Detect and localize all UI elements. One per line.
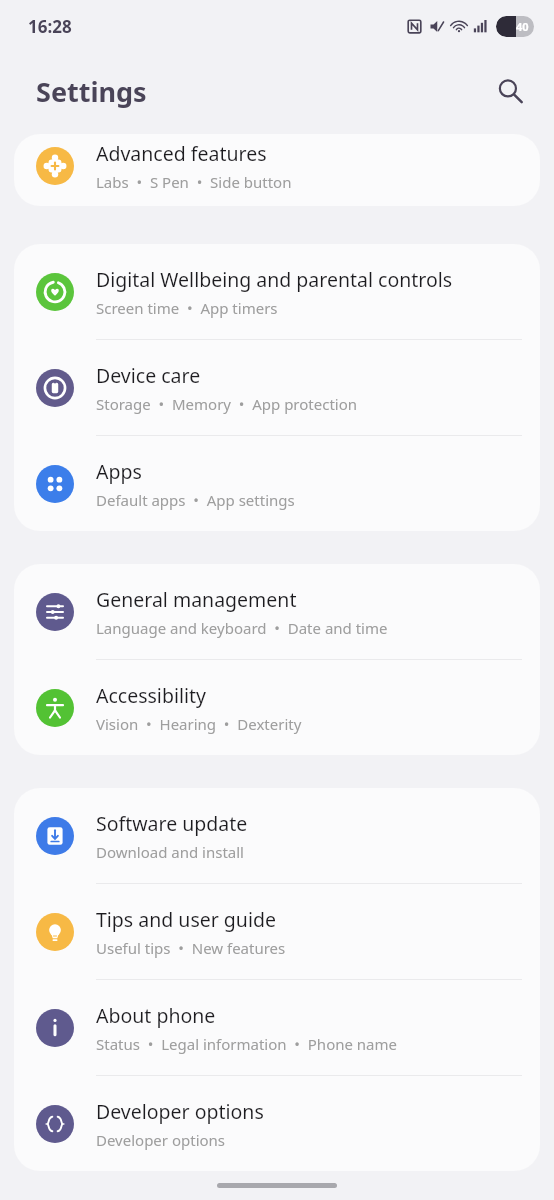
staticText: Useful tips • New features xyxy=(96,938,286,958)
staticText: Storage • Memory • App protection xyxy=(96,394,358,414)
staticText: General management xyxy=(96,586,297,613)
staticText: Language and keyboard • Date and time xyxy=(96,618,388,638)
staticText: Apps xyxy=(96,458,142,485)
staticText: Software update xyxy=(96,810,248,837)
staticText: Accessibility xyxy=(96,682,206,709)
staticText: Default apps • App settings xyxy=(96,490,295,510)
staticText: About phone xyxy=(96,1002,216,1029)
button[interactable]: General management xyxy=(14,564,540,659)
staticText: Developer options xyxy=(96,1130,226,1150)
button[interactable]: Digital Wellbeing and parental controls xyxy=(14,244,540,339)
button[interactable]: Tips and user guide xyxy=(14,884,540,979)
button[interactable]: Device care xyxy=(14,340,540,435)
button[interactable]: Developer options xyxy=(14,1076,540,1171)
staticText: Device care xyxy=(96,362,201,389)
staticText: Digital Wellbeing and parental controls xyxy=(96,266,453,293)
button[interactable]: About phone xyxy=(14,980,540,1075)
staticText: Tips and user guide xyxy=(96,906,276,933)
staticText: Advanced features xyxy=(96,140,267,167)
button[interactable]: Advanced features xyxy=(14,134,540,202)
staticText: Download and install xyxy=(96,842,244,862)
button[interactable]: Software update xyxy=(14,788,540,883)
button[interactable]: Accessibility xyxy=(14,660,540,755)
staticText: Screen time • App timers xyxy=(96,298,278,318)
staticText: Vision • Hearing • Dexterity xyxy=(96,714,302,734)
staticText: 40 xyxy=(516,19,529,34)
staticText: Settings xyxy=(36,73,147,110)
staticText: Developer options xyxy=(96,1098,264,1125)
staticText: 16:28 xyxy=(28,15,72,38)
staticText: Status • Legal information • Phone name xyxy=(96,1034,398,1054)
button[interactable]: Search xyxy=(488,69,532,113)
button[interactable]: Apps xyxy=(14,436,540,531)
staticText: Labs • S Pen • Side button xyxy=(96,172,292,192)
